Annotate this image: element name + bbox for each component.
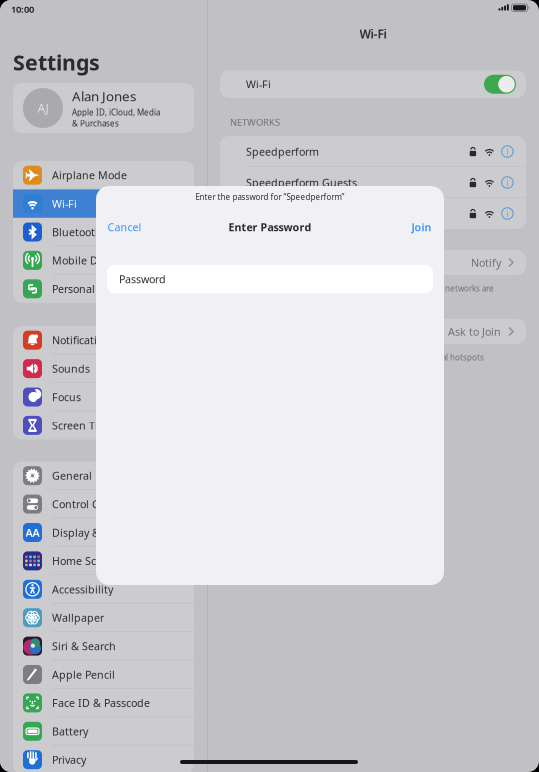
button[interactable]: Bluetooth	[13, 218, 194, 246]
staticText: Speedperform Guests	[246, 175, 357, 190]
button[interactable]: Mobile Data	[13, 246, 194, 275]
staticText: Face ID & Passcode	[52, 696, 150, 710]
staticText: AJ	[37, 100, 48, 116]
button[interactable]: General	[13, 461, 194, 490]
staticText: Bluetooth	[52, 225, 102, 239]
staticText: Sounds	[52, 361, 90, 376]
staticText: Wallpaper	[52, 611, 104, 625]
staticText: Cancel	[108, 220, 142, 234]
staticText: Mobile Data	[52, 253, 114, 267]
staticText: Join	[411, 220, 431, 234]
button[interactable]: Home Screen & Dock	[13, 547, 194, 575]
staticText: Notifications	[52, 333, 115, 347]
button[interactable]: Airplane Mode	[13, 161, 194, 189]
staticText: & Purchases	[72, 118, 119, 129]
staticText: i	[506, 207, 508, 220]
staticText: Privacy	[52, 753, 86, 767]
button[interactable]: Face ID & Passcode	[13, 689, 194, 717]
staticText: Notify	[471, 255, 501, 270]
staticText: Allow this device to automatically disco…	[228, 352, 484, 363]
staticText: Control Centre	[52, 497, 126, 511]
button[interactable]: Speedperform	[220, 136, 526, 167]
button[interactable]: Sounds	[13, 354, 194, 383]
button[interactable]: Wallpaper	[13, 603, 194, 632]
button[interactable]: Cancel	[104, 217, 146, 237]
staticText: Known networks will be joined automatica…	[228, 283, 494, 294]
staticText: Screen Time	[52, 418, 114, 432]
staticText: Accessibility	[52, 582, 113, 596]
staticText: available, you will be notified.	[228, 292, 338, 303]
staticText: Apple ID, iCloud, Media	[72, 107, 160, 118]
button[interactable]: Join	[407, 217, 435, 237]
button[interactable]: Battery	[13, 717, 194, 745]
button[interactable]: Personal Hotspot	[13, 275, 194, 303]
button[interactable]: Notifications	[13, 326, 194, 354]
button[interactable]: Other	[220, 198, 526, 229]
button[interactable]: Wi-Fi	[220, 70, 526, 98]
staticText: AA	[25, 525, 39, 540]
staticText: Display & Brightness	[52, 525, 158, 540]
staticText: Ask to Join	[448, 324, 501, 339]
button[interactable]: Speedperform Guests	[220, 167, 526, 198]
button[interactable]: Accessibility	[13, 575, 194, 603]
staticText: Password	[119, 272, 166, 286]
staticText: i	[506, 145, 508, 158]
button[interactable]: Ask to Join Networks	[220, 250, 526, 275]
staticText: NETWORKS	[230, 116, 280, 128]
staticText: Ask to Join Networks	[246, 255, 349, 270]
button[interactable]: AJ	[13, 83, 194, 133]
staticText: Apple Pencil	[52, 667, 115, 682]
button[interactable]: Siri & Search	[13, 632, 194, 660]
staticText: Wi-Fi	[52, 196, 77, 211]
staticText: Speedperform	[246, 144, 319, 159]
staticText: Settings	[13, 48, 100, 76]
staticText: 10:00	[11, 3, 34, 15]
button[interactable]: Apple Pencil	[13, 660, 194, 689]
staticText: Siri & Search	[52, 639, 116, 653]
staticText: Wi-Fi	[359, 26, 386, 42]
staticText: Home Screen & Dock	[52, 554, 158, 568]
button[interactable]: Screen Time	[13, 411, 194, 440]
button[interactable]: Privacy	[13, 745, 194, 772]
button[interactable]: Control Centre	[13, 490, 194, 518]
staticText: Wi-Fi	[246, 77, 271, 91]
staticText: Enter Password	[228, 220, 311, 234]
staticText: General	[52, 469, 92, 483]
button[interactable]: Wi-Fi	[13, 189, 194, 218]
staticText: Battery	[52, 724, 88, 738]
button[interactable]: Auto-Join Hotspot	[220, 319, 526, 344]
staticText: Alan Jones	[72, 87, 136, 105]
staticText: Airplane Mode	[52, 168, 127, 182]
button[interactable]: AA	[13, 518, 194, 547]
staticText: i	[506, 176, 508, 189]
staticText: Enter the password for “Speedperform”	[195, 191, 344, 202]
staticText: Personal Hotspot	[52, 282, 138, 296]
button[interactable]: Focus	[13, 383, 194, 411]
staticText: Focus	[52, 390, 81, 404]
